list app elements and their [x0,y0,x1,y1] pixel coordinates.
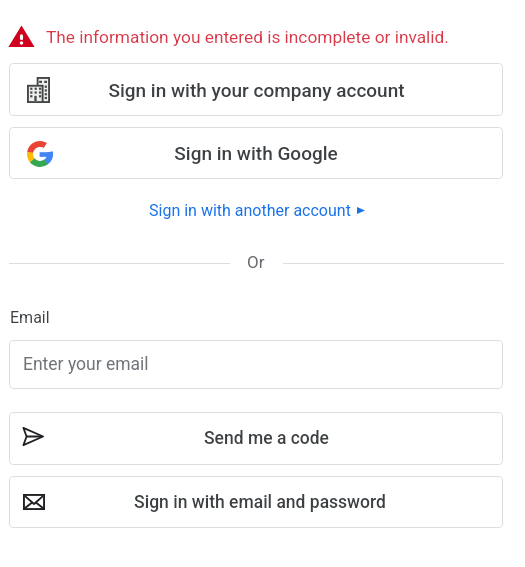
staticText: Sign in with email and password [134,492,386,513]
staticText: The information you entered is incomplet… [46,27,449,47]
button[interactable]: Sign in with your company account [9,63,503,116]
staticText: Sign in with your company account [108,79,405,101]
button[interactable]: Send me a code [9,412,503,465]
staticText: Email [10,308,50,327]
staticText: Sign in with Google [174,142,338,164]
staticText: Or [247,252,265,272]
staticText: Enter your email [23,354,149,375]
button[interactable]: Sign in with another account [145,197,369,224]
button[interactable]: Enter your email [9,340,503,389]
button[interactable]: Sign in with Google [9,127,503,179]
staticText: Sign in with another account [149,201,351,220]
staticText: Send me a code [204,428,329,449]
button[interactable]: Sign in with email and password [9,476,503,528]
